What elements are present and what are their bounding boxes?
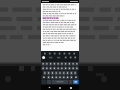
- button[interactable]: [44, 77, 47, 82]
- button[interactable]: [59, 67, 63, 72]
- button[interactable]: [63, 72, 67, 77]
- button[interactable]: Recents: [68, 85, 74, 90]
- button[interactable]: [59, 62, 63, 67]
- button[interactable]: [47, 67, 51, 72]
- button[interactable]: [67, 77, 71, 82]
- button[interactable]: [75, 67, 79, 72]
- button[interactable]: [51, 72, 55, 77]
- button[interactable]: [59, 77, 63, 82]
- button[interactable]: [41, 62, 44, 67]
- button[interactable]: [47, 62, 51, 67]
- button[interactable]: [75, 77, 79, 82]
- button[interactable]: [47, 77, 51, 82]
- button[interactable]: [55, 77, 59, 82]
- button[interactable]: Home: [57, 85, 63, 90]
- button[interactable]: [67, 62, 71, 67]
- button[interactable]: [41, 72, 44, 77]
- button[interactable]: [44, 62, 47, 67]
- button[interactable]: [41, 77, 44, 82]
- button[interactable]: [55, 72, 59, 77]
- button[interactable]: [55, 67, 59, 72]
- button[interactable]: Emoji: [47, 82, 51, 85]
- button[interactable]: [44, 72, 47, 77]
- button[interactable]: [47, 72, 51, 77]
- button[interactable]: [71, 77, 75, 82]
- button[interactable]: [55, 62, 59, 67]
- button[interactable]: [67, 72, 71, 77]
- button[interactable]: [41, 67, 44, 72]
- button[interactable]: [51, 62, 55, 67]
- button[interactable]: Space: [51, 82, 69, 85]
- button[interactable]: Symbols: [41, 82, 47, 85]
- button[interactable]: [75, 72, 79, 77]
- button[interactable]: [63, 77, 67, 82]
- button[interactable]: [51, 67, 55, 72]
- button[interactable]: [75, 62, 79, 67]
- button[interactable]: [59, 72, 63, 77]
- button[interactable]: [71, 62, 75, 67]
- button[interactable]: [67, 67, 71, 72]
- button[interactable]: [71, 72, 75, 77]
- button[interactable]: [44, 67, 47, 72]
- button[interactable]: [63, 67, 67, 72]
- button[interactable]: Period: [69, 82, 73, 85]
- button[interactable]: Enter: [73, 82, 79, 85]
- button[interactable]: [63, 62, 67, 67]
- button[interactable]: [51, 77, 55, 82]
- button[interactable]: [71, 67, 75, 72]
- button[interactable]: Back: [46, 85, 52, 90]
